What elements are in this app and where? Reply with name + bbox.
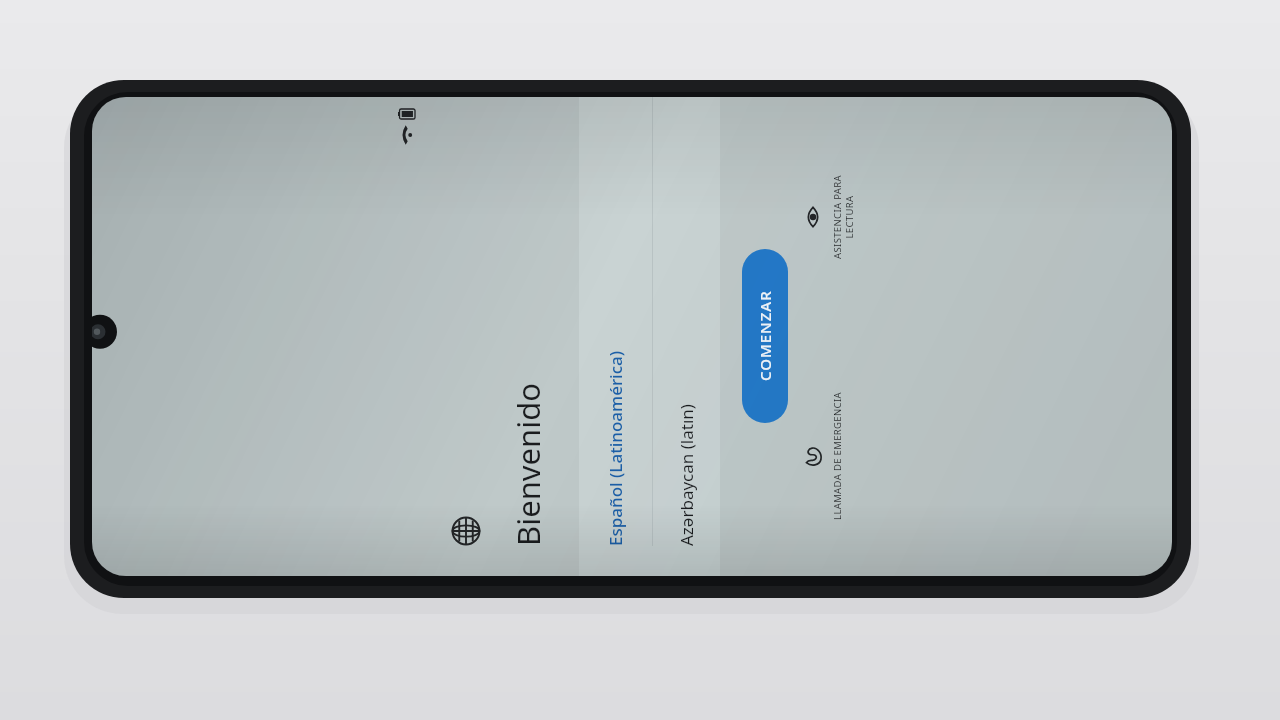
other: Reading assistance [802,206,824,228]
staticText: Español (Latinoamérica) [604,350,627,546]
other: Emergency call [802,445,824,467]
staticText: Bienvenido [507,383,549,546]
staticText: COMENZAR [755,290,775,381]
other: Language [451,516,481,546]
button[interactable]: Azərbaycan (latın) [653,97,720,576]
button[interactable]: Emergency call [802,337,844,576]
staticText: Azərbaycan (latın) [675,404,698,546]
button[interactable]: Español (Latinoamérica) [579,97,652,576]
staticText: ASISTENCIA PARA LECTURA [831,175,856,259]
button[interactable]: COMENZAR [742,249,788,423]
staticText: LLAMADA DE EMERGENCIA [831,392,844,520]
button[interactable]: Reading assistance [802,97,856,337]
